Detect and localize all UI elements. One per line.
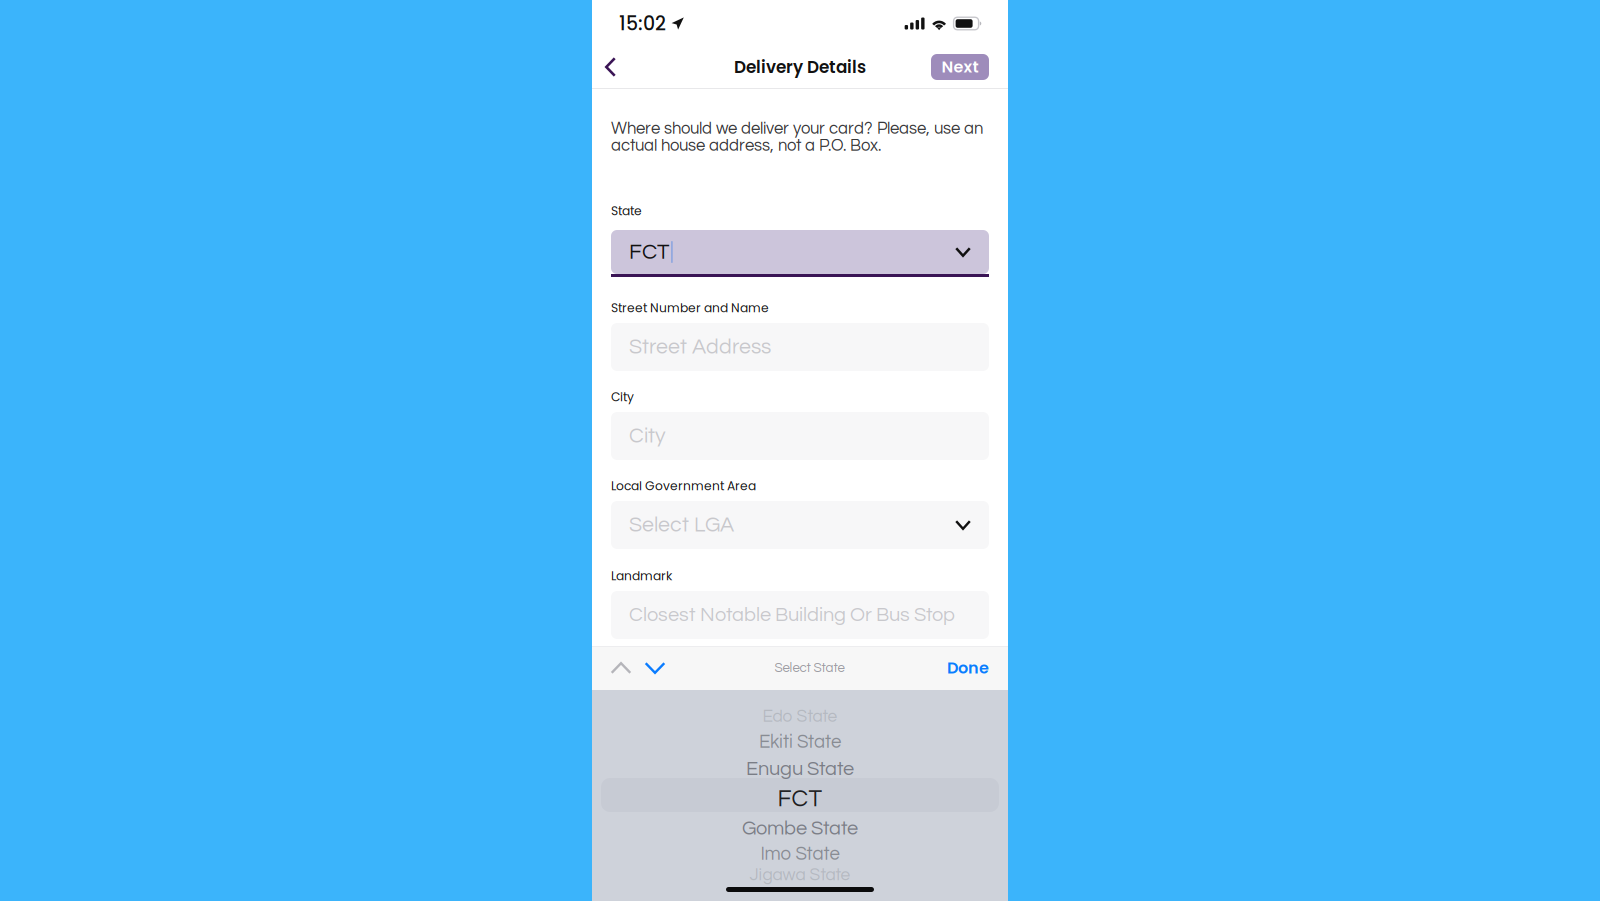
staticText: Enugu State	[746, 759, 854, 779]
staticText: Gombe State	[742, 818, 858, 839]
button[interactable]: Street Address	[611, 323, 989, 371]
staticText: City	[629, 425, 666, 447]
staticText: Select State	[774, 661, 844, 675]
staticText: Landmark	[611, 567, 672, 585]
staticText: Jigawa State	[749, 866, 850, 884]
button[interactable]: FCT	[611, 230, 989, 277]
staticText: Where should we deliver your card? Pleas…	[611, 120, 983, 154]
staticText: State	[611, 202, 642, 220]
staticText: Ekiti State	[759, 732, 841, 752]
button[interactable]: Done	[947, 646, 989, 690]
staticText: Select LGA	[629, 514, 734, 536]
button[interactable]: Next field	[638, 646, 672, 690]
button[interactable]: Back	[605, 46, 639, 88]
button[interactable]: Next	[931, 54, 989, 80]
staticText: FCT	[777, 787, 822, 811]
button[interactable]: Previous field	[604, 646, 638, 690]
staticText: Street Address	[629, 336, 771, 358]
button[interactable]: City	[611, 412, 989, 460]
button[interactable]: Select LGA	[611, 501, 989, 549]
staticText: Next	[941, 56, 978, 78]
staticText: Local Government Area	[611, 477, 756, 495]
staticText: Street Number and Name	[611, 299, 769, 317]
staticText: Done	[947, 657, 989, 679]
staticText: Edo State	[762, 708, 837, 725]
button[interactable]: Closest Notable Building Or Bus Stop	[611, 591, 989, 639]
staticText: Delivery Details	[734, 55, 866, 79]
staticText: Imo State	[760, 844, 839, 864]
staticText: Closest Notable Building Or Bus Stop	[629, 605, 955, 625]
staticText: FCT	[629, 241, 669, 263]
staticText: 15:02	[619, 10, 666, 37]
staticText: City	[611, 388, 634, 406]
